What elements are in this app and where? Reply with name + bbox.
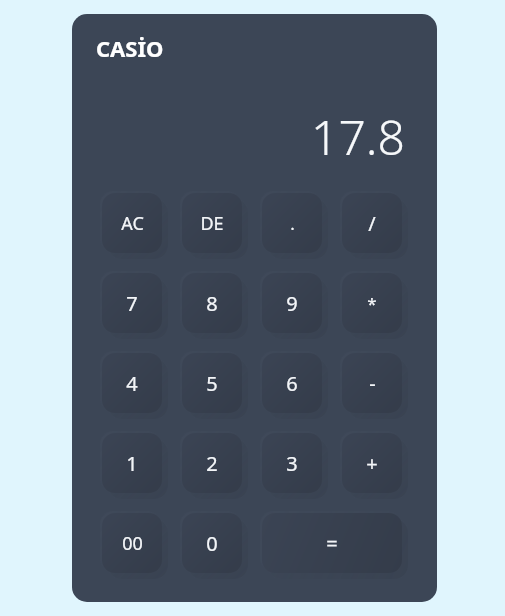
button[interactable]: . [262, 193, 322, 253]
staticText: - [369, 370, 376, 397]
staticText: 8 [206, 290, 218, 317]
staticText: + [366, 450, 378, 477]
staticText: CASİO [96, 33, 164, 63]
button[interactable]: 5 [182, 353, 242, 413]
button[interactable]: - [342, 353, 402, 413]
button[interactable]: + [342, 433, 402, 493]
button[interactable]: 0 [182, 513, 242, 573]
staticText: 1 [126, 450, 138, 477]
staticText: 6 [286, 370, 298, 397]
staticText: 00 [122, 531, 143, 556]
staticText: * [367, 292, 377, 315]
button[interactable]: 2 [182, 433, 242, 493]
button[interactable]: 6 [262, 353, 322, 413]
staticText: DE [200, 211, 224, 236]
button[interactable]: 00 [102, 513, 162, 573]
staticText: . [290, 212, 295, 235]
button[interactable]: 8 [182, 273, 242, 333]
button[interactable]: 1 [102, 433, 162, 493]
button[interactable]: 3 [262, 433, 322, 493]
button[interactable]: * [342, 273, 402, 333]
staticText: = [326, 530, 338, 557]
staticText: 9 [286, 290, 298, 317]
button[interactable]: 4 [102, 353, 162, 413]
staticText: 5 [206, 370, 218, 397]
staticText: 3 [286, 450, 298, 477]
button[interactable]: 9 [262, 273, 322, 333]
staticText: 4 [126, 370, 138, 397]
staticText: 0 [206, 530, 218, 557]
button[interactable]: DE [182, 193, 242, 253]
button[interactable]: 7 [102, 273, 162, 333]
staticText: / [368, 210, 376, 237]
staticText: 2 [206, 450, 218, 477]
button[interactable]: = [262, 513, 402, 573]
staticText: AC [121, 211, 144, 236]
button[interactable]: / [342, 193, 402, 253]
staticText: 17.8 [311, 104, 405, 169]
button[interactable]: AC [102, 193, 162, 253]
staticText: 7 [126, 290, 138, 317]
